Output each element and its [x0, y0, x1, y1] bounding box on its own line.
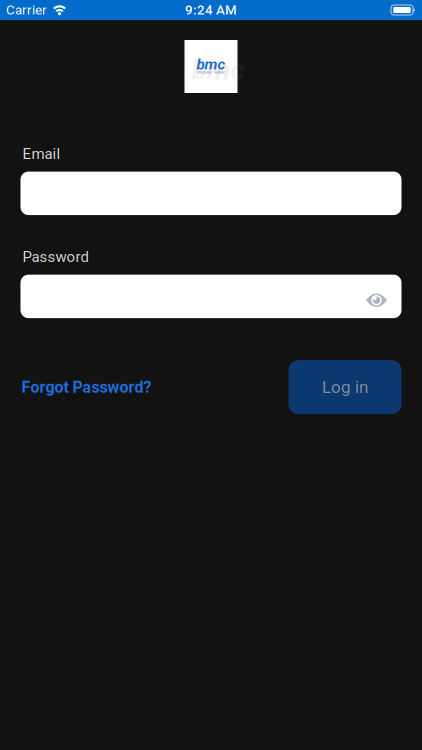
staticText: Carrier: [6, 2, 47, 18]
staticText: 9:24 AM: [185, 2, 237, 18]
staticText: Forgot Password?: [21, 378, 151, 397]
staticText: Log in: [322, 377, 368, 397]
button[interactable]: [20, 172, 401, 215]
staticText: Password: [22, 248, 88, 266]
staticText: Email: [22, 145, 60, 163]
staticText: bmc: [196, 55, 225, 73]
button[interactable]: [20, 275, 401, 318]
button[interactable]: Forgot Password?: [20, 378, 151, 397]
button[interactable]: Log in: [288, 360, 401, 414]
staticText: telecoms mobile: [197, 70, 225, 74]
staticText: bmc: [191, 54, 244, 86]
